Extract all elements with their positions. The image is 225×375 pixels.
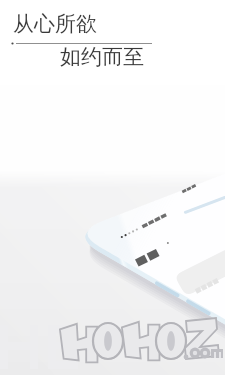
staticText: 从心所欲 [13, 11, 97, 37]
staticText: 如约而至 [60, 44, 144, 70]
